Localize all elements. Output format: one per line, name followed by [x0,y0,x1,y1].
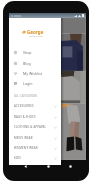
button[interactable]: Shop [9,47,61,57]
staticText: BAGS & SHOES [14,115,36,119]
button[interactable]: George [22,29,44,38]
button[interactable]: WOMEN'S WEAR [9,143,61,153]
staticText: MEN'S WEAR [14,136,33,140]
staticText: CLOTHING & APPAREL [14,125,47,129]
button[interactable]: Recent apps [68,164,73,169]
button[interactable]: ACCESSORIES [9,101,61,111]
staticText: Blog [23,61,31,66]
button[interactable]: Home [46,164,51,169]
staticText: ALL CATEGORIES [14,94,38,98]
button[interactable]: My Wishlist [9,68,61,78]
staticText: WOMEN'S WEAR [14,146,38,150]
staticText: KIDS [14,156,21,160]
button[interactable]: Blog [9,58,61,68]
button[interactable]: KIDS [9,153,61,163]
button[interactable]: CLOTHING & APPAREL [9,122,61,132]
staticText: Shop [23,50,32,55]
staticText: ACCESSORIES [14,104,34,108]
button[interactable]: BAGS & SHOES [9,112,61,122]
staticText: George [27,29,44,35]
button[interactable]: Login [9,78,61,88]
button[interactable]: MEN'S WEAR [9,133,61,143]
staticText: My Wishlist [23,71,43,76]
staticText: Login [23,81,33,86]
staticText: fashion & more [29,35,43,38]
button[interactable]: Back [23,164,28,169]
